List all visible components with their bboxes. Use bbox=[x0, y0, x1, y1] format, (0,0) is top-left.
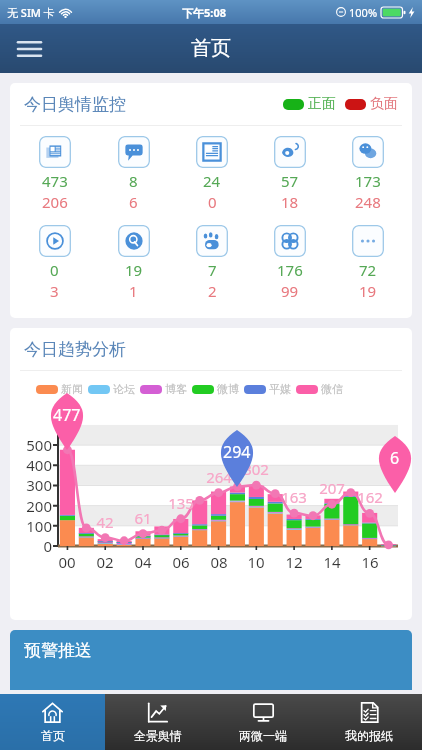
staticText: 10 bbox=[240, 552, 272, 572]
button[interactable]: 微信 bbox=[329, 135, 407, 213]
other: 新闻 bbox=[39, 136, 71, 168]
staticText: 3 bbox=[50, 281, 59, 301]
button[interactable]: Menu bbox=[6, 26, 52, 72]
button[interactable]: 论坛 bbox=[94, 135, 173, 213]
staticText: 173 bbox=[355, 171, 381, 191]
staticText: 300 bbox=[10, 475, 52, 495]
staticText: 论坛 bbox=[113, 382, 135, 396]
staticText: 400 bbox=[10, 455, 52, 475]
staticText: 18 bbox=[281, 192, 299, 212]
staticText: 微信 bbox=[321, 382, 343, 396]
staticText: 206 bbox=[42, 192, 68, 212]
button[interactable]: 搜索 bbox=[94, 224, 173, 302]
button[interactable]: 其他 bbox=[329, 224, 407, 302]
staticText: 162 bbox=[350, 487, 390, 507]
staticText: 19 bbox=[125, 260, 143, 280]
staticText: 135 bbox=[161, 493, 201, 513]
staticText: 今日舆情监控 bbox=[24, 94, 126, 115]
staticText: 0 bbox=[50, 260, 59, 280]
staticText: 2 bbox=[208, 281, 217, 301]
staticText: 163 bbox=[274, 487, 314, 507]
staticText: 24 bbox=[203, 171, 221, 191]
staticText: 200 bbox=[10, 496, 52, 516]
staticText: 正面 bbox=[308, 95, 336, 113]
staticText: 微博 bbox=[217, 382, 239, 396]
staticText: 14 bbox=[316, 552, 348, 572]
other: 微博 bbox=[274, 136, 306, 168]
staticText: 预警推送 bbox=[24, 640, 92, 661]
button[interactable]: 客户端 bbox=[251, 224, 329, 302]
staticText: 04 bbox=[127, 552, 159, 572]
staticText: 207 bbox=[312, 478, 352, 498]
button[interactable]: 我的报纸 bbox=[316, 694, 422, 750]
button[interactable]: 微博 bbox=[251, 135, 329, 213]
other: 视频 bbox=[39, 225, 71, 257]
staticText: 500 bbox=[10, 435, 52, 455]
other: 其他 bbox=[352, 225, 384, 257]
button[interactable]: 两微一端 bbox=[210, 694, 316, 750]
button[interactable]: 博客 bbox=[173, 135, 251, 213]
button[interactable]: 首页 bbox=[0, 694, 105, 750]
staticText: 今日趋势分析 bbox=[24, 339, 126, 360]
staticText: 6 bbox=[129, 192, 138, 212]
staticText: 6 bbox=[390, 447, 400, 469]
staticText: 全景舆情 bbox=[134, 728, 182, 743]
staticText: 8 bbox=[129, 171, 138, 191]
staticText: 新闻 bbox=[61, 382, 83, 396]
staticText: 02 bbox=[89, 552, 121, 572]
staticText: 264 bbox=[199, 467, 239, 487]
staticText: 1 bbox=[129, 281, 138, 301]
button[interactable]: 预警推送 bbox=[10, 630, 412, 690]
staticText: 12 bbox=[278, 552, 310, 572]
staticText: 72 bbox=[359, 260, 377, 280]
staticText: 61 bbox=[123, 508, 163, 528]
other: 百度 bbox=[196, 225, 228, 257]
other: 搜索 bbox=[118, 225, 150, 257]
staticText: 我的报纸 bbox=[345, 728, 393, 743]
other: 博客 bbox=[196, 136, 228, 168]
staticText: 首页 bbox=[41, 728, 65, 743]
staticText: 06 bbox=[165, 552, 197, 572]
staticText: 16 bbox=[354, 552, 386, 572]
staticText: 无 SIM 卡 bbox=[7, 5, 55, 20]
staticText: 0 bbox=[10, 536, 52, 556]
staticText: 19 bbox=[359, 281, 377, 301]
staticText: 473 bbox=[42, 171, 68, 191]
button[interactable]: 视频 bbox=[15, 224, 94, 302]
staticText: 下午5:08 bbox=[182, 5, 226, 20]
staticText: 0 bbox=[208, 192, 217, 212]
staticText: 176 bbox=[277, 260, 303, 280]
button[interactable]: 百度 bbox=[173, 224, 251, 302]
staticText: 负面 bbox=[370, 95, 398, 113]
other: 微信 bbox=[352, 136, 384, 168]
staticText: 首页 bbox=[191, 36, 231, 61]
button[interactable]: 全景舆情 bbox=[105, 694, 210, 750]
staticText: 294 bbox=[223, 441, 251, 463]
staticText: 248 bbox=[355, 192, 381, 212]
staticText: 平媒 bbox=[269, 382, 291, 396]
button[interactable]: 新闻 bbox=[15, 135, 94, 213]
staticText: 08 bbox=[203, 552, 235, 572]
other: 客户端 bbox=[274, 225, 306, 257]
staticText: 两微一端 bbox=[239, 728, 287, 743]
staticText: 57 bbox=[281, 171, 299, 191]
staticText: 7 bbox=[208, 260, 217, 280]
staticText: 00 bbox=[51, 552, 83, 572]
other: 论坛 bbox=[118, 136, 150, 168]
staticText: 42 bbox=[85, 512, 125, 532]
staticText: 100% bbox=[349, 5, 378, 20]
staticText: 博客 bbox=[165, 382, 187, 396]
staticText: 100 bbox=[10, 516, 52, 536]
staticText: 477 bbox=[53, 404, 81, 426]
staticText: 99 bbox=[281, 281, 299, 301]
staticText: 302 bbox=[236, 459, 276, 479]
